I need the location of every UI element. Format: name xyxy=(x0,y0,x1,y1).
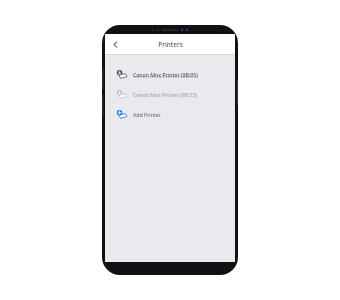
button[interactable]: Canon Mnx Printer (9B:95) xyxy=(105,64,235,84)
staticText: Canon Mnx Printer (9B:73) xyxy=(133,91,197,98)
button[interactable]: Add Printer xyxy=(105,104,235,124)
button[interactable]: Back xyxy=(108,37,122,51)
staticText: Add Printer xyxy=(133,111,161,118)
staticText: Canon Mnx Printer (9B:95) xyxy=(133,71,198,78)
staticText: Printers xyxy=(158,40,183,49)
button[interactable]: Canon Mnx Printer (9B:73) xyxy=(105,84,235,104)
